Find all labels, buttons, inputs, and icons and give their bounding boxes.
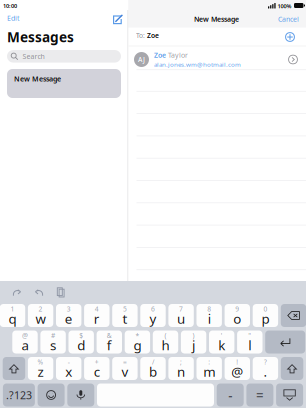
staticText: ": [248, 331, 251, 340]
button[interactable]: 9: [225, 304, 250, 327]
staticText: Zoe: [147, 31, 159, 40]
staticText: d: [77, 336, 85, 354]
button[interactable]: 5: [112, 304, 138, 327]
button[interactable]: Search: [7, 50, 121, 63]
button[interactable]: :: [196, 357, 222, 380]
staticText: Edit: [7, 13, 20, 23]
button[interactable]: !: [225, 357, 250, 380]
staticText: 100%: [277, 2, 291, 10]
staticText: +: [95, 358, 99, 366]
button[interactable]: 0: [253, 304, 278, 327]
button[interactable]: -: [56, 357, 81, 380]
button[interactable]: ": [237, 330, 262, 353]
button[interactable]: New Message: [7, 69, 121, 98]
button[interactable]: 2: [28, 304, 53, 327]
button[interactable]: /: [140, 357, 166, 380]
staticText: q: [8, 310, 16, 327]
button[interactable]: *: [125, 330, 150, 353]
staticText: ?: [264, 358, 267, 366]
staticText: Search: [23, 52, 45, 61]
staticText: 1: [10, 305, 14, 313]
staticText: Messages: [7, 28, 74, 46]
staticText: y: [149, 310, 156, 327]
staticText: 4: [95, 305, 99, 313]
staticText: k: [218, 336, 225, 354]
button[interactable]: Dash: [217, 383, 244, 406]
staticText: t: [122, 310, 127, 327]
button[interactable]: Shift: [281, 357, 303, 380]
staticText: Cancel: [278, 14, 299, 24]
staticText: AJ: [138, 55, 145, 64]
button[interactable]: Edit: [7, 13, 20, 23]
staticText: New Message: [14, 74, 61, 83]
staticText: f: [107, 336, 112, 354]
button[interactable]: #: [40, 330, 66, 353]
button[interactable]: Cancel: [278, 14, 299, 24]
button[interactable]: ;: [168, 357, 194, 380]
staticText: 7: [179, 305, 183, 313]
staticText: e: [65, 310, 73, 327]
button[interactable]: Shift: [3, 357, 25, 380]
button[interactable]: Undo: [9, 284, 25, 300]
button[interactable]: @: [12, 330, 38, 353]
staticText: u: [177, 310, 185, 327]
staticText: w: [36, 310, 46, 327]
button[interactable]: 6: [140, 304, 166, 327]
button[interactable]: 1: [0, 304, 25, 327]
staticText: @: [231, 363, 243, 380]
staticText: .: [263, 363, 267, 380]
button[interactable]: ': [209, 330, 234, 353]
button[interactable]: %: [28, 357, 53, 380]
staticText: ': [221, 331, 223, 340]
staticText: c: [94, 363, 100, 380]
staticText: r: [94, 310, 100, 327]
button[interactable]: Hide Keyboard: [276, 383, 303, 406]
button[interactable]: =: [112, 357, 138, 380]
button[interactable]: 4: [84, 304, 109, 327]
staticText: 2: [39, 305, 43, 313]
button[interactable]: +: [84, 357, 109, 380]
button[interactable]: Numbers: [3, 383, 35, 406]
button[interactable]: 8: [196, 304, 222, 327]
staticText: n: [177, 363, 185, 380]
staticText: j: [192, 336, 195, 354]
button[interactable]: Return: [265, 330, 305, 353]
staticText: -: [228, 386, 232, 404]
staticText: ): [193, 331, 195, 340]
staticText: -: [68, 358, 70, 366]
button[interactable]: Delete: [281, 304, 306, 327]
staticText: *: [135, 331, 139, 340]
button[interactable]: AJ: [134, 50, 298, 69]
button[interactable]: Equals: [246, 383, 273, 406]
button[interactable]: Compose: [112, 14, 123, 25]
button[interactable]: 3: [56, 304, 81, 327]
button[interactable]: (: [153, 330, 178, 353]
staticText: New Message: [194, 14, 239, 24]
button[interactable]: Paste: [53, 284, 69, 300]
button[interactable]: ): [181, 330, 206, 353]
staticText: 5: [123, 305, 127, 313]
staticText: !: [236, 358, 238, 366]
button[interactable]: 7: [168, 304, 194, 327]
button[interactable]: Add Contact: [285, 32, 295, 42]
staticText: g: [133, 336, 141, 354]
button[interactable]: Emoji: [38, 383, 65, 406]
button[interactable]: $: [68, 330, 94, 353]
staticText: v: [121, 363, 128, 380]
staticText: a: [21, 336, 28, 354]
button[interactable]: Redo: [31, 284, 47, 300]
staticText: #: [51, 331, 55, 340]
staticText: (: [164, 331, 166, 340]
staticText: l: [248, 336, 251, 354]
staticText: s: [50, 336, 56, 354]
staticText: Zoe: [154, 51, 166, 60]
button[interactable]: Dictate: [67, 383, 94, 406]
staticText: m: [203, 363, 215, 380]
button[interactable]: ?: [253, 357, 278, 380]
staticText: p: [261, 310, 269, 327]
staticText: /: [152, 358, 154, 366]
staticText: @: [22, 331, 28, 340]
staticText: o: [233, 310, 241, 327]
button[interactable]: &: [97, 330, 122, 353]
